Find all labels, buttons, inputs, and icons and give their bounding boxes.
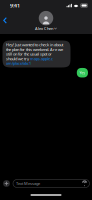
staticText: Alex Chen (35, 26, 53, 31)
staticText: om/place/abc1 (6, 61, 31, 66)
staticText: Hey! Just wanted to check in about the p… (6, 42, 63, 57)
button[interactable]: Add attachment (2, 179, 10, 187)
button[interactable]: Back (3, 13, 17, 27)
staticText: 9:41 (10, 2, 20, 9)
staticText: Yes (79, 70, 85, 75)
staticText: maps.apple.c (30, 56, 53, 61)
staticText: should we try (6, 56, 30, 61)
staticText: Text Message (16, 181, 40, 186)
